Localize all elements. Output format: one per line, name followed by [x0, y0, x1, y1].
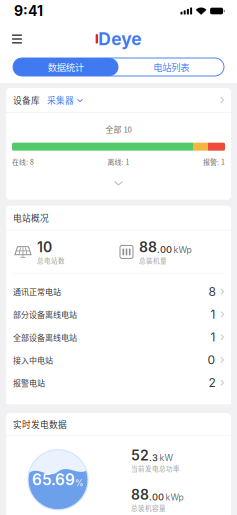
staticText: 0	[207, 353, 215, 367]
staticText: 8	[208, 284, 215, 299]
staticText: kWp	[173, 245, 191, 255]
staticText: .3	[149, 452, 158, 463]
staticText: 全部 10	[105, 124, 131, 135]
staticText: .00	[149, 491, 164, 503]
staticText: 接入中电站	[13, 354, 53, 366]
staticText: 报警: 1	[203, 157, 225, 167]
staticText: 电站概况	[13, 211, 49, 224]
staticText: 1	[210, 307, 215, 322]
staticText: 电站列表	[153, 60, 189, 74]
staticText: 9:41	[14, 2, 43, 19]
staticText: 88	[139, 239, 157, 256]
button[interactable]: 数据统计	[13, 58, 118, 76]
staticText: 设备库	[13, 94, 40, 106]
staticText: %	[75, 478, 84, 488]
staticText: 总装机容量	[131, 503, 166, 513]
staticText: 10	[37, 239, 52, 256]
button[interactable]: 设备库	[6, 88, 231, 112]
staticText: Deye	[98, 28, 141, 49]
button[interactable]: 报警电站	[6, 371, 231, 394]
staticText: 报警电站	[13, 377, 45, 388]
staticText: kW	[159, 453, 173, 463]
staticText: 实时发电数据	[13, 418, 67, 430]
button[interactable]: Menu	[4, 30, 30, 48]
staticText: 2	[208, 375, 215, 390]
button[interactable]: 电站列表	[118, 58, 224, 76]
button[interactable]: 部分设备离线电站	[6, 303, 231, 326]
staticText: .00	[157, 244, 172, 255]
staticText: 总电站数	[37, 256, 65, 265]
staticText: 部分设备离线电站	[13, 308, 77, 320]
button[interactable]: 全部设备离线电站	[6, 326, 231, 348]
staticText: 离线: 1	[107, 157, 129, 167]
staticText: 当前发电总功率	[131, 464, 180, 473]
staticText: 88	[131, 486, 149, 503]
button[interactable]: 接入中电站	[6, 348, 231, 371]
staticText: 52	[131, 447, 149, 464]
staticText: 65.69	[32, 470, 75, 489]
button[interactable]: 通讯正常电站	[6, 280, 231, 303]
staticText: 通讯正常电站	[13, 286, 61, 297]
staticText: 数据统计	[48, 60, 84, 74]
staticText: 采集器	[47, 94, 74, 106]
staticText: kWp	[165, 492, 183, 503]
staticText: 总装机量	[139, 256, 167, 265]
staticText: 在线: 8	[12, 157, 34, 167]
staticText: 全部设备离线电站	[13, 331, 77, 343]
staticText: 1	[210, 330, 215, 344]
